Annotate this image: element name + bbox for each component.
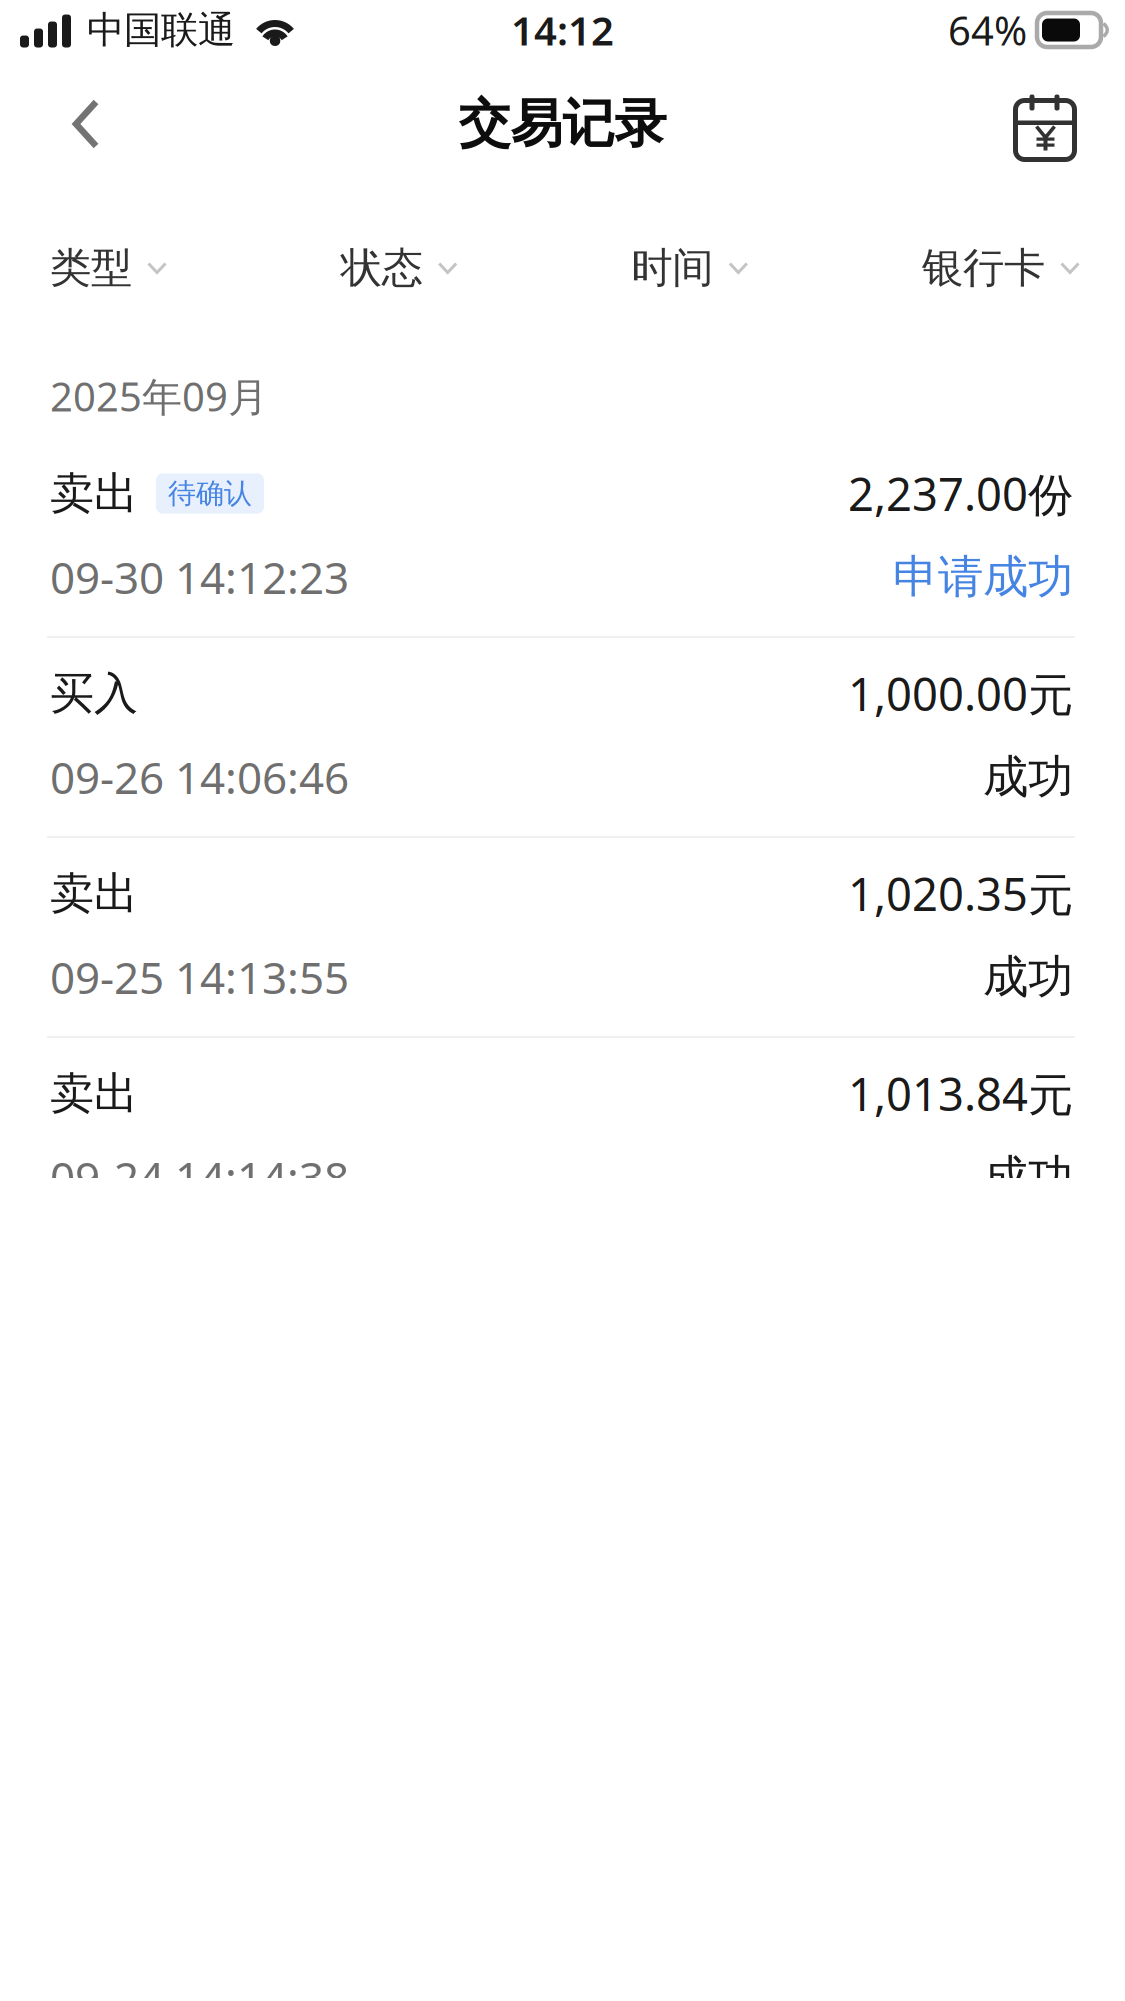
staticText: 1,013.84元	[848, 1063, 1073, 1124]
staticText: 1,020.35元	[848, 863, 1073, 924]
staticText: 卖出	[50, 1066, 138, 1120]
staticText: 09-26 14:06:46	[50, 748, 349, 806]
button[interactable]: 类型	[50, 225, 167, 311]
button[interactable]: 时间	[631, 225, 748, 311]
staticText: 卖出	[50, 866, 138, 920]
staticText: 成功	[983, 949, 1073, 1005]
button[interactable]: 银行卡	[922, 225, 1080, 311]
staticText: 1,000.00元	[848, 663, 1073, 724]
staticText: 成功	[983, 1149, 1073, 1205]
staticText: 09-25 14:13:55	[50, 948, 349, 1006]
staticText: 中国联通	[87, 7, 235, 53]
staticText: 待确认	[168, 476, 252, 511]
staticText: 成功	[983, 749, 1073, 805]
staticText: 09-24 14:14:38	[50, 1148, 349, 1206]
button[interactable]: 买入	[0, 638, 1125, 838]
button[interactable]: 卖出	[0, 1038, 1125, 1238]
button[interactable]: 状态	[341, 225, 458, 311]
staticText: 银行卡	[922, 243, 1045, 293]
staticText: 类型	[50, 243, 132, 293]
staticText: 09-30 14:12:23	[50, 548, 349, 606]
staticText: 状态	[341, 243, 423, 293]
button[interactable]: 卖出	[0, 838, 1125, 1038]
staticText: 2,237.00份	[848, 463, 1073, 524]
staticText: 卖出	[50, 466, 138, 520]
button[interactable]: 按月筛选	[997, 66, 1093, 182]
staticText: 申请成功	[893, 549, 1073, 605]
staticText: 买入	[50, 666, 138, 720]
staticText: 交易记录	[458, 92, 666, 156]
button[interactable]: 返回	[38, 66, 134, 182]
staticText: 时间	[631, 243, 713, 293]
staticText: 14:12	[511, 3, 614, 56]
staticText: 2025年09月	[50, 369, 268, 422]
staticText: 64%	[948, 3, 1027, 56]
button[interactable]: 卖出	[0, 438, 1125, 638]
